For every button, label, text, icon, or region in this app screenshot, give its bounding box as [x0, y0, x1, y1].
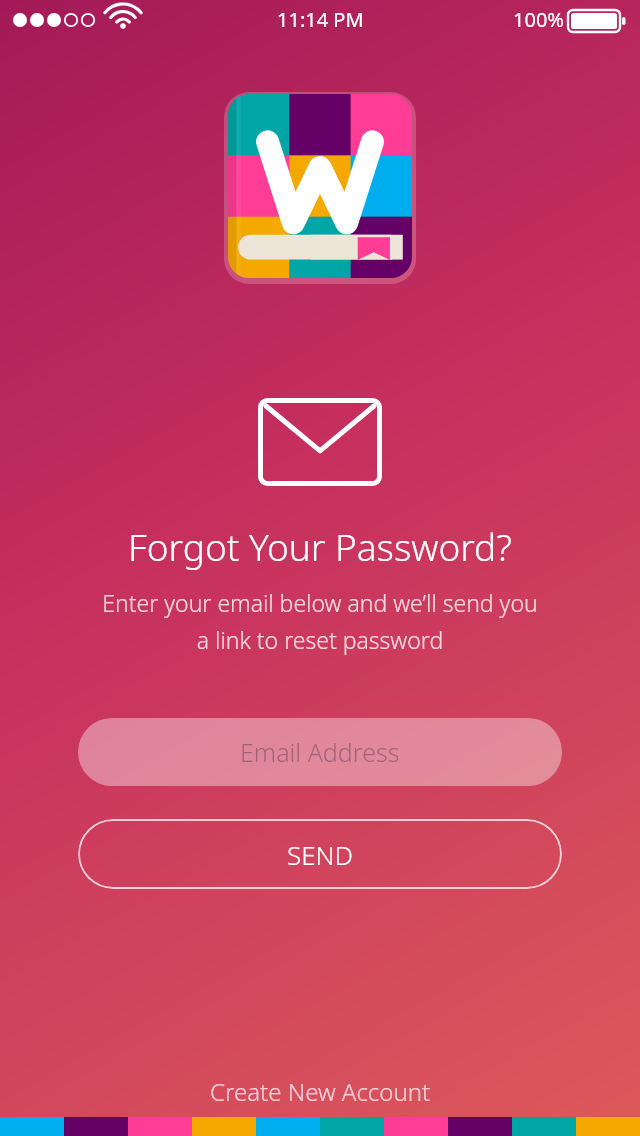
staticText: 100%: [513, 6, 564, 33]
other: Email: [258, 398, 382, 486]
staticText: Forgot Your Password?: [128, 521, 512, 571]
staticText: SEND: [287, 837, 354, 872]
button[interactable]: SEND: [78, 819, 562, 889]
staticText: Email Address: [240, 735, 400, 769]
staticText: Enter your email below and we’ll send yo…: [102, 587, 538, 656]
staticText: 11:14 PM: [277, 6, 364, 33]
button[interactable]: Create New Account: [186, 1069, 455, 1114]
button[interactable]: Email Address: [78, 718, 562, 786]
staticText: Create New Account: [210, 1075, 431, 1108]
